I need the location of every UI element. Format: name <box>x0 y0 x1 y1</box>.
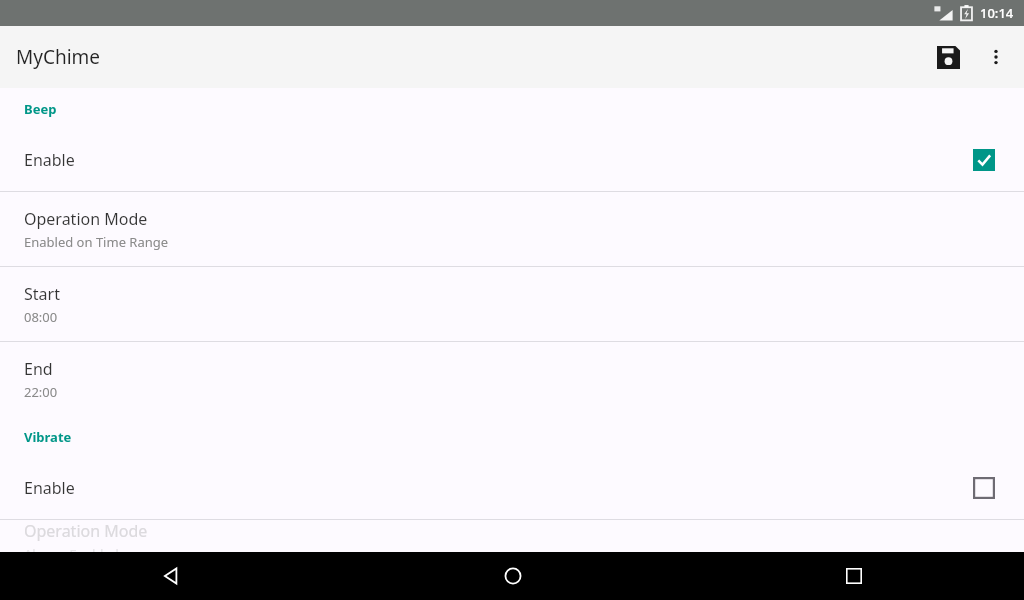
button[interactable]: Home <box>342 552 683 600</box>
staticText: Enabled on Time Range <box>24 233 169 251</box>
staticText: Enable <box>24 477 973 499</box>
button[interactable]: Enable <box>0 457 1024 519</box>
button[interactable]: Enable <box>0 129 1024 191</box>
staticText: Operation Mode <box>24 208 148 230</box>
staticText: 22:00 <box>24 383 58 401</box>
button: Operation Mode <box>0 520 1024 552</box>
button[interactable]: Save <box>924 33 972 81</box>
button[interactable]: End <box>0 342 1024 416</box>
staticText: Start <box>24 283 60 305</box>
staticText: Operation Mode <box>24 520 148 542</box>
button[interactable]: More options <box>972 33 1020 81</box>
button[interactable]: Back <box>0 552 342 600</box>
button[interactable]: Operation Mode <box>0 192 1024 266</box>
button[interactable]: Start <box>0 267 1024 341</box>
staticText: End <box>24 358 53 380</box>
staticText: 08:00 <box>24 308 58 326</box>
button[interactable]: Recent apps <box>683 552 1024 600</box>
staticText: Enable <box>24 149 973 171</box>
staticText: 10:14 <box>980 4 1014 22</box>
staticText: Beep <box>24 100 57 118</box>
staticText: Always Enabled <box>24 545 119 552</box>
staticText: Vibrate <box>24 428 72 446</box>
staticText: MyChime <box>16 44 101 70</box>
